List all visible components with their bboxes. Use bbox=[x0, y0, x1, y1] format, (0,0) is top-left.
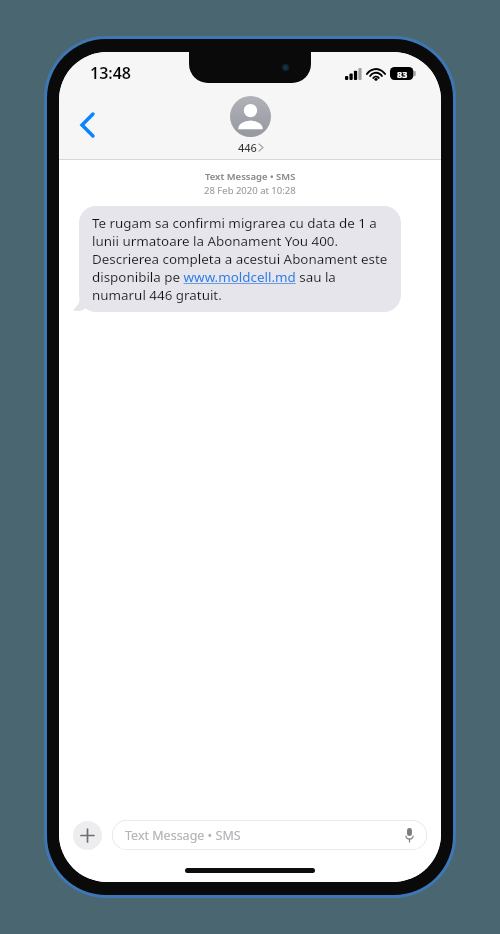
button[interactable]: Text Message • SMS bbox=[112, 820, 427, 850]
staticText: 83 bbox=[397, 68, 408, 80]
staticText: 13:48 bbox=[90, 62, 132, 84]
button[interactable]: Back bbox=[65, 103, 109, 147]
button[interactable]: Add attachment bbox=[73, 821, 102, 850]
staticText: Text Message • SMS bbox=[205, 170, 296, 183]
button[interactable]: Te rugam sa confirmi migrarea cu data de… bbox=[79, 206, 401, 312]
staticText: 446 bbox=[238, 140, 257, 155]
button[interactable]: Record audio bbox=[399, 825, 419, 845]
staticText: Text Message • SMS bbox=[125, 827, 241, 844]
staticText: Te rugam sa confirmi migrarea cu data de… bbox=[92, 214, 388, 304]
button[interactable]: 446 bbox=[230, 96, 271, 155]
staticText: 28 Feb 2020 at 10:28 bbox=[204, 184, 296, 197]
